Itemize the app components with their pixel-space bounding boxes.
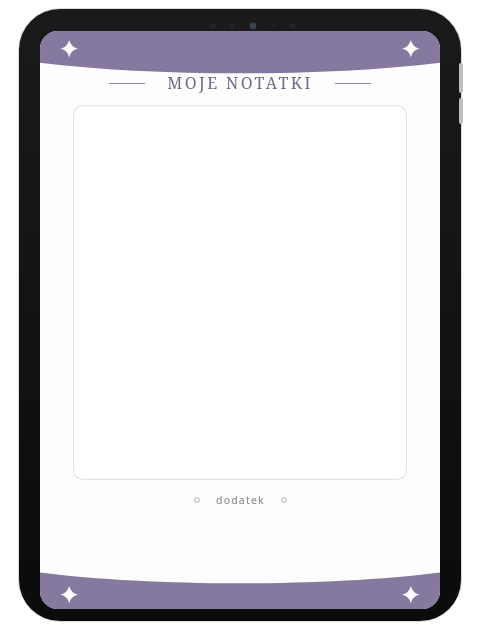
other: Decorative footer: [40, 561, 440, 609]
staticText: MOJE NOTATKI: [167, 72, 313, 94]
button[interactable]: dodatek: [40, 489, 440, 511]
staticText: dodatek: [216, 493, 265, 507]
